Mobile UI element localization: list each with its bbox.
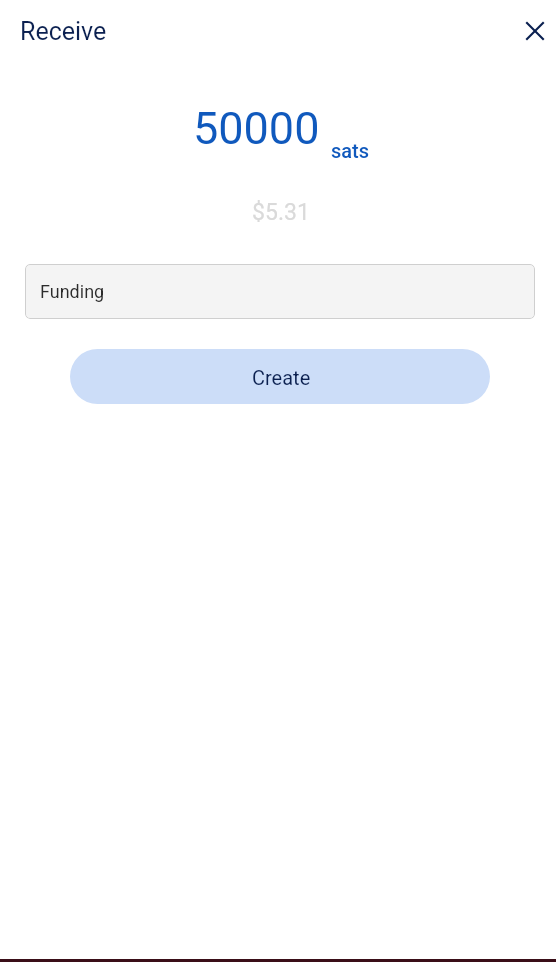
button[interactable]: Create <box>70 349 490 404</box>
staticText: sats <box>331 139 370 162</box>
staticText: 50000 <box>193 102 320 155</box>
staticText: Funding <box>40 281 105 302</box>
staticText: $5.31 <box>3 199 556 226</box>
button[interactable]: Close <box>512 8 556 54</box>
button[interactable]: Funding <box>25 264 535 319</box>
staticText: Create <box>252 366 311 389</box>
staticText: Receive <box>20 17 107 46</box>
